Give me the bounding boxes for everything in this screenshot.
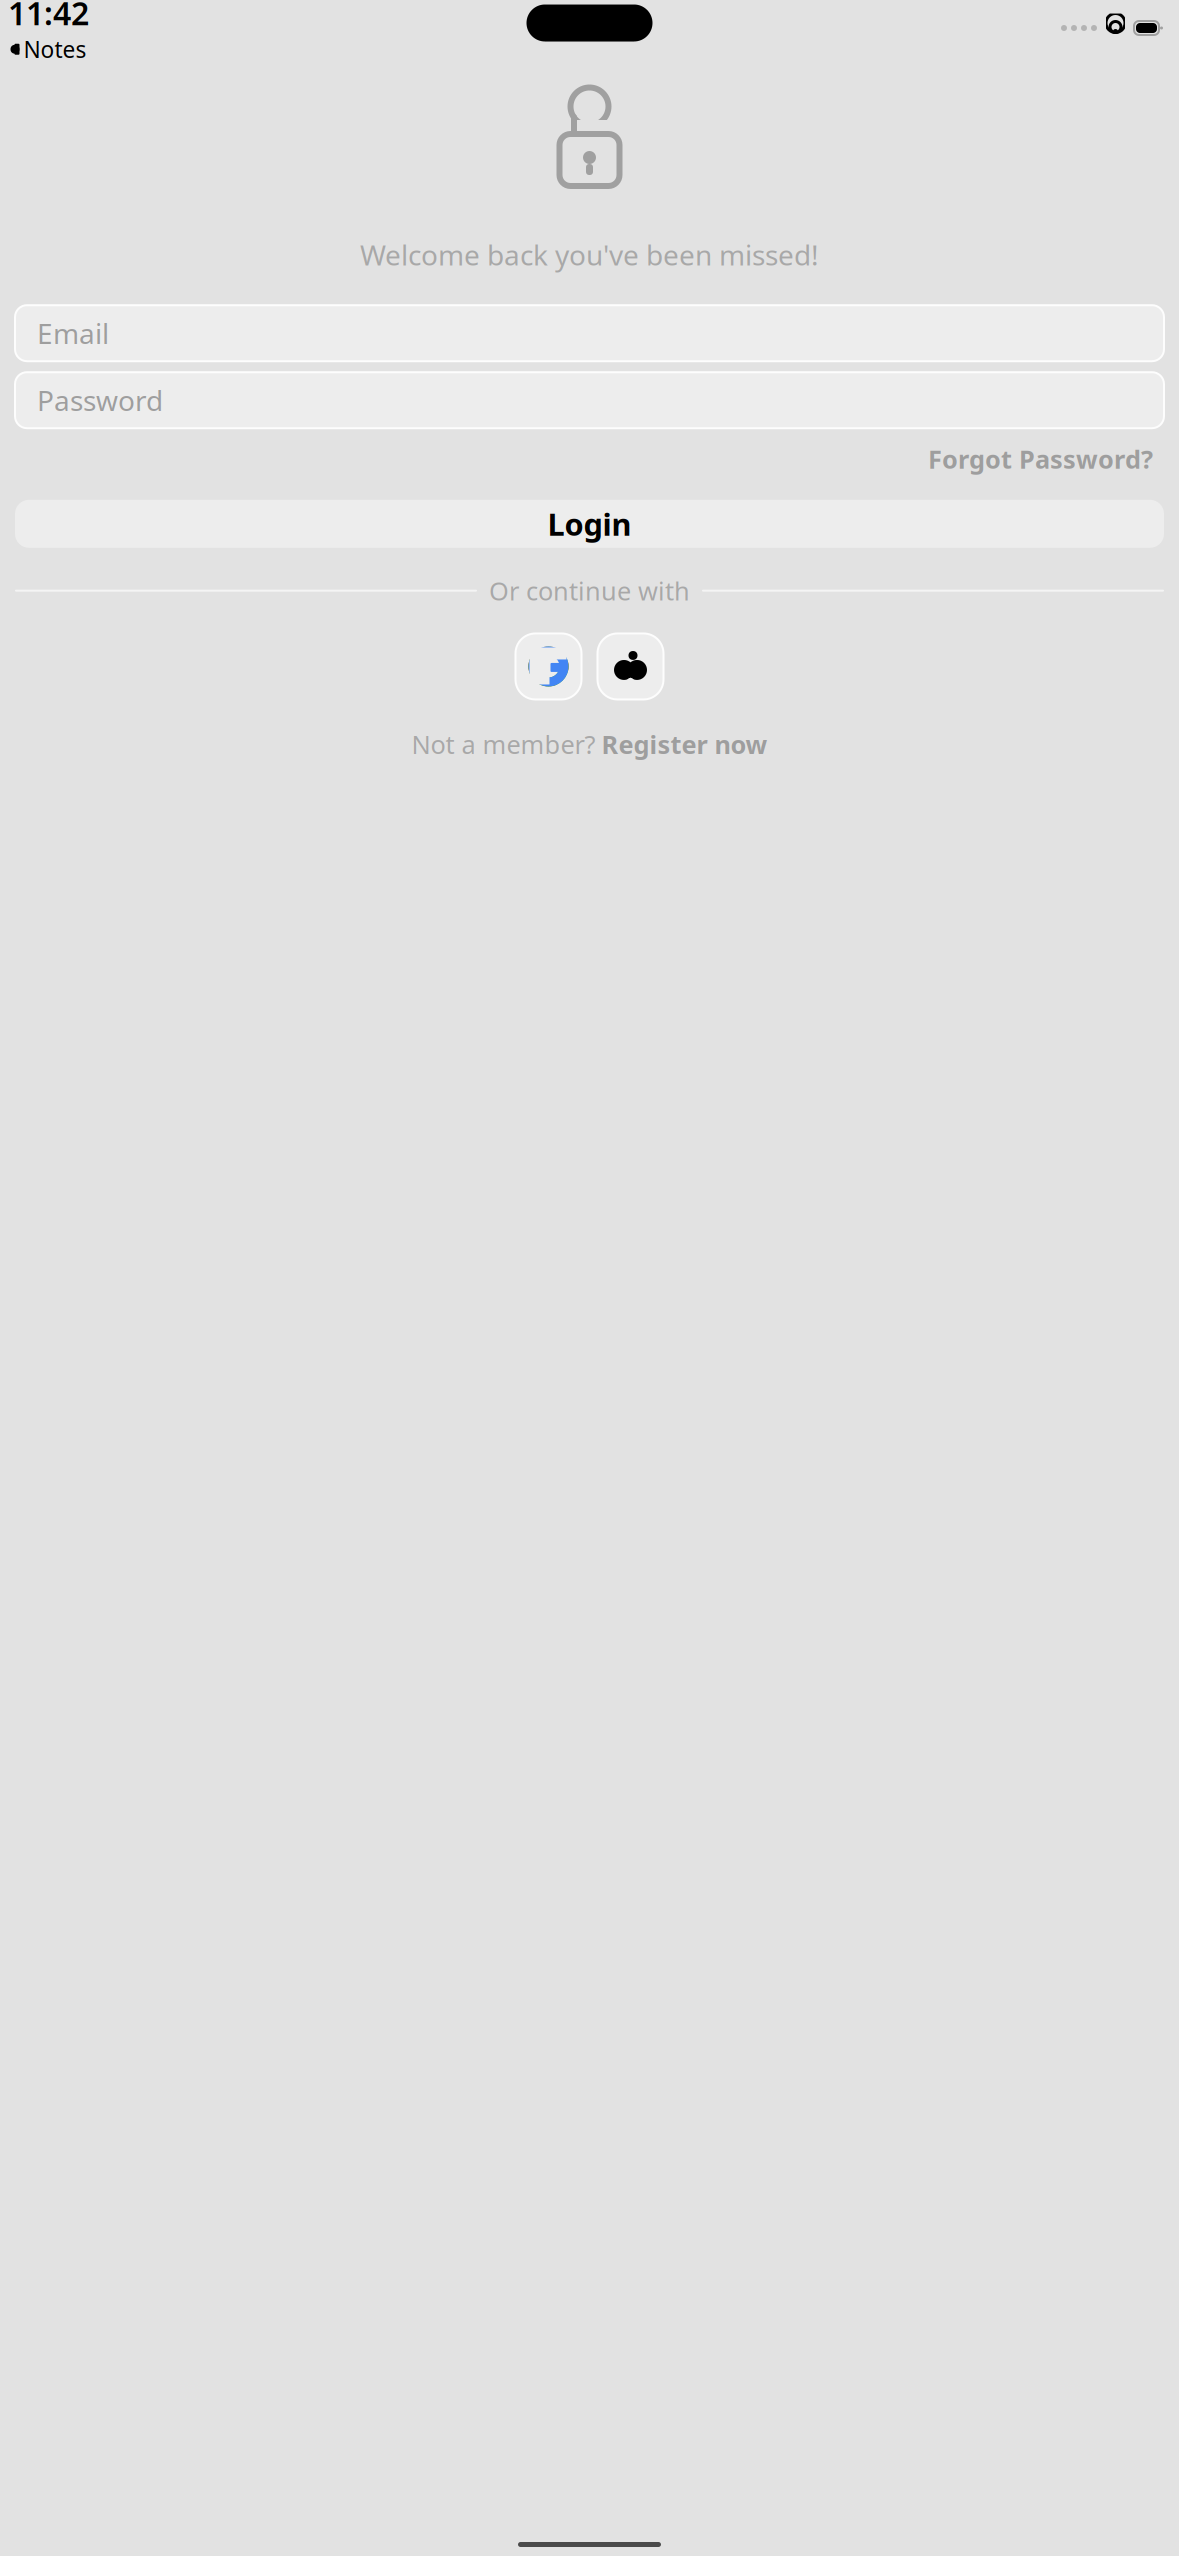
button[interactable]: Continue with Apple (597, 633, 663, 699)
button[interactable]: Login (15, 500, 1164, 548)
staticText: Notes (23, 34, 86, 64)
button[interactable]: Continue with Google (515, 633, 581, 699)
staticText: Welcome back you've been missed! (360, 236, 819, 273)
staticText: 11:42 (8, 0, 89, 34)
staticText: Register now (601, 727, 767, 761)
staticText: Password (37, 382, 163, 419)
staticText: Login (547, 503, 631, 544)
button[interactable]: Not a member? (411, 727, 767, 761)
button[interactable]: Notes (10, 34, 86, 64)
staticText: Not a member? (411, 727, 595, 761)
staticText: Forgot Password? (928, 442, 1153, 476)
staticText: Email (37, 315, 109, 352)
button[interactable]: Forgot Password? (928, 442, 1153, 476)
staticText: Or continue with (489, 574, 690, 607)
